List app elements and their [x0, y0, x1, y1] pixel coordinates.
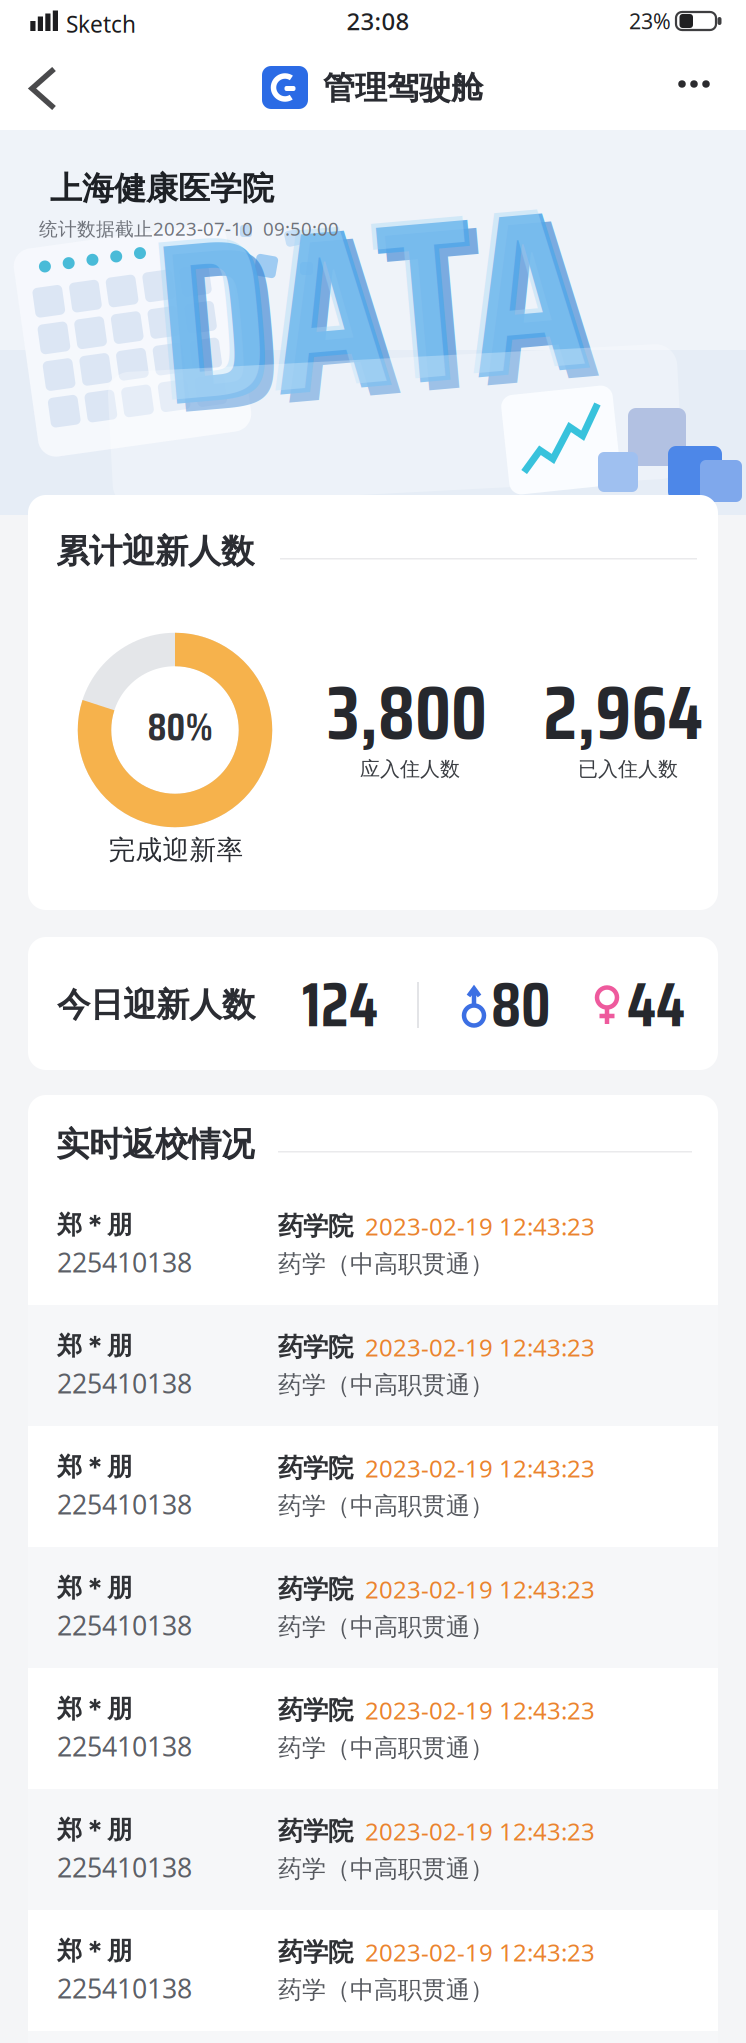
staticText: 药学（中高职贯通）: [278, 1249, 494, 1279]
button[interactable]: Back: [0, 50, 76, 116]
staticText: DATA: [152, 122, 581, 483]
button[interactable]: 郑＊朋: [28, 1910, 718, 2031]
staticText: 44: [627, 957, 685, 1053]
staticText: 药学（中高职贯通）: [278, 1370, 494, 1400]
staticText: 225410138: [57, 1365, 192, 1401]
staticText: 上海健康医学院: [50, 169, 274, 208]
button[interactable]: 郑＊朋: [28, 1426, 718, 1547]
staticText: 225410138: [57, 1849, 192, 1885]
staticText: 23:08: [346, 5, 409, 37]
staticText: 郑＊朋: [57, 1693, 132, 1724]
staticText: 2023-02-19 12:43:23: [365, 1210, 595, 1242]
staticText: 药学（中高职贯通）: [278, 1612, 494, 1642]
staticText: 225410138: [57, 1486, 192, 1522]
staticText: 药学（中高职贯通）: [278, 1854, 494, 1884]
staticText: 80%: [147, 697, 212, 757]
staticText: 今日迎新人数: [57, 984, 255, 1025]
staticText: Sketch: [66, 9, 136, 39]
staticText: 药学院: [278, 1574, 353, 1605]
staticText: 郑＊朋: [57, 1451, 132, 1482]
button[interactable]: 郑＊朋: [28, 1789, 718, 1910]
staticText: 3,800: [327, 654, 487, 772]
staticText: 药学（中高职贯通）: [278, 1733, 494, 1763]
staticText: 已入住人数: [578, 757, 678, 781]
staticText: 郑＊朋: [57, 1572, 132, 1603]
staticText: DATA: [166, 134, 595, 495]
staticText: 应入住人数: [360, 757, 460, 781]
staticText: 郑＊朋: [57, 1330, 132, 1361]
staticText: 2,964: [543, 654, 702, 772]
staticText: 2023-02-19 12:43:23: [365, 1331, 595, 1363]
button[interactable]: 郑＊朋: [28, 1305, 718, 1426]
staticText: 225410138: [57, 1607, 192, 1643]
staticText: 郑＊朋: [57, 1814, 132, 1845]
staticText: 郑＊朋: [57, 1209, 132, 1240]
staticText: 药学院: [278, 1211, 353, 1242]
staticText: 药学院: [278, 1816, 353, 1847]
staticText: 23%: [629, 7, 671, 35]
button[interactable]: More: [664, 64, 724, 104]
button[interactable]: 郑＊朋: [28, 1547, 718, 1668]
staticText: 2023-02-19 12:43:23: [365, 1936, 595, 1968]
staticText: 管理驾驶舱: [323, 68, 483, 108]
staticText: 完成迎新率: [108, 834, 243, 866]
staticText: 2023-02-19 12:43:23: [365, 1694, 595, 1726]
staticText: 124: [302, 957, 378, 1053]
staticText: 80: [491, 957, 551, 1053]
staticText: 药学院: [278, 1332, 353, 1363]
staticText: DATA: [157, 126, 586, 487]
button[interactable]: 郑＊朋: [28, 1668, 718, 1789]
staticText: 实时返校情况: [56, 1124, 254, 1165]
staticText: 225410138: [57, 1244, 192, 1280]
staticText: 2023-02-19 12:43:23: [365, 1452, 595, 1484]
staticText: 225410138: [57, 1970, 192, 2006]
staticText: 药学院: [278, 1695, 353, 1726]
staticText: 2023-02-19 12:43:23: [365, 1815, 595, 1847]
staticText: 统计数据截止2023-07-10 09:50:00: [39, 216, 339, 241]
staticText: 累计迎新人数: [56, 531, 254, 572]
button[interactable]: 郑＊朋: [28, 1184, 718, 1305]
staticText: 2023-02-19 12:43:23: [365, 1573, 595, 1605]
staticText: 225410138: [57, 1728, 192, 1764]
staticText: 药学院: [278, 1937, 353, 1968]
staticText: 郑＊朋: [57, 1935, 132, 1966]
staticText: 药学（中高职贯通）: [278, 1491, 494, 1521]
staticText: 药学（中高职贯通）: [278, 1975, 494, 2005]
staticText: 药学院: [278, 1453, 353, 1484]
